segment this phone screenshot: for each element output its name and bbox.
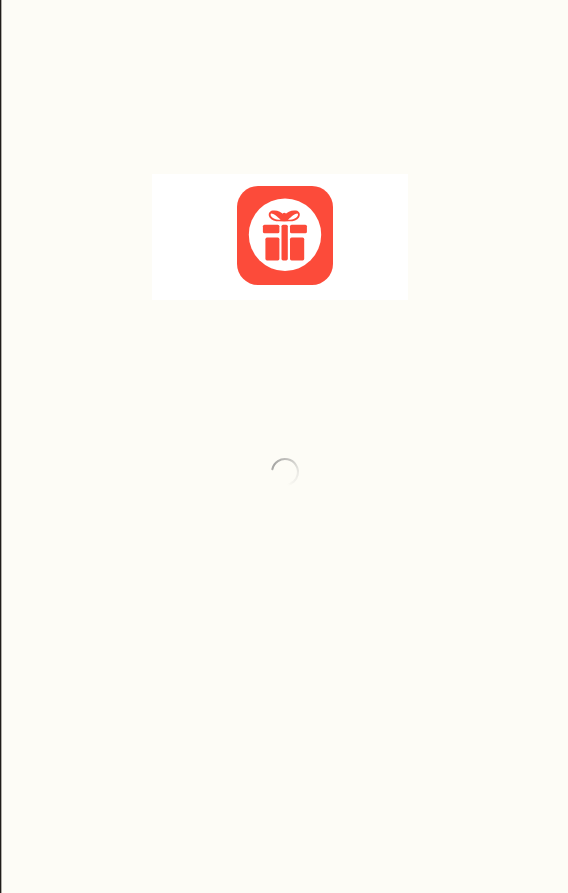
other: Loading <box>271 458 299 486</box>
button[interactable]: App logo <box>237 186 333 285</box>
